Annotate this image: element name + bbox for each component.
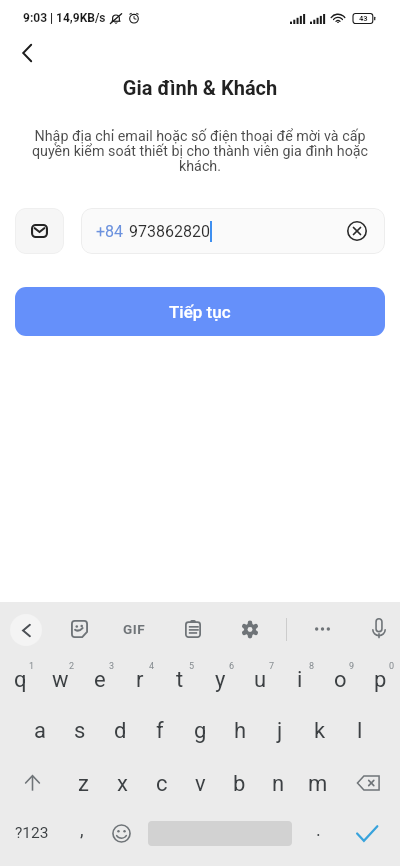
button[interactable]: Email <box>15 208 64 254</box>
staticText: e <box>94 667 106 693</box>
button[interactable]: b <box>220 757 259 808</box>
button[interactable]: v <box>181 757 220 808</box>
button[interactable]: Space <box>142 813 300 853</box>
staticText: p <box>374 667 387 693</box>
button[interactable]: Enter <box>345 813 389 853</box>
staticText: l <box>357 718 363 744</box>
button[interactable]: t <box>160 655 200 706</box>
staticText: ?123 <box>15 824 49 842</box>
staticText: 4 <box>149 661 155 672</box>
staticText: w <box>52 667 69 693</box>
staticText: 0 <box>389 661 395 672</box>
staticText: b <box>233 771 246 797</box>
staticText: 7 <box>269 661 275 672</box>
staticText: 1 <box>29 661 35 672</box>
staticText: g <box>194 718 207 744</box>
staticText: d <box>114 718 127 744</box>
staticText: f <box>156 718 164 744</box>
staticText: Gia đình & Khách <box>0 76 400 99</box>
staticText: h <box>234 718 247 744</box>
staticText: r <box>136 667 144 693</box>
button[interactable]: m <box>298 757 337 808</box>
button[interactable]: Tiếp tục <box>15 287 385 336</box>
staticText: j <box>277 718 283 744</box>
staticText: m <box>308 771 328 797</box>
button[interactable]: k <box>300 706 340 757</box>
staticText: 9:03 | 14,9KB/s <box>23 11 106 25</box>
staticText: 5 <box>189 661 195 672</box>
staticText: s <box>74 718 86 744</box>
button[interactable]: g <box>180 706 220 757</box>
staticText: k <box>314 718 326 744</box>
button[interactable]: Backspace <box>337 757 400 808</box>
button[interactable]: y <box>200 655 240 706</box>
staticText: +84 <box>96 222 124 241</box>
staticText: , <box>80 819 84 840</box>
staticText: i <box>297 667 303 693</box>
staticText: Tiếp tục <box>169 302 231 322</box>
button[interactable]: u <box>240 655 280 706</box>
button[interactable]: p <box>360 655 400 706</box>
button[interactable]: i <box>280 655 320 706</box>
button[interactable]: Emoji <box>101 813 141 853</box>
button[interactable]: Clear text <box>346 220 368 242</box>
button[interactable]: GIF <box>118 614 150 644</box>
staticText: 2 <box>69 661 75 672</box>
button[interactable]: s <box>60 706 100 757</box>
button[interactable]: d <box>100 706 140 757</box>
button[interactable]: x <box>103 757 142 808</box>
staticText: . <box>316 819 321 840</box>
button[interactable]: c <box>142 757 181 808</box>
button[interactable]: . <box>299 813 337 853</box>
staticText: z <box>78 771 89 797</box>
button[interactable]: Clipboard <box>178 614 208 644</box>
staticText: y <box>215 667 226 693</box>
staticText: o <box>334 667 347 693</box>
staticText: c <box>156 771 168 797</box>
staticText: GIF <box>123 621 146 637</box>
button[interactable]: r <box>120 655 160 706</box>
button[interactable]: Settings <box>235 614 265 644</box>
button[interactable]: e <box>80 655 120 706</box>
staticText: t <box>176 667 184 693</box>
staticText: 9 <box>349 661 355 672</box>
button[interactable]: Voice input <box>364 613 394 643</box>
staticText: n <box>272 771 285 797</box>
button[interactable]: ?123 <box>2 813 62 853</box>
button[interactable]: , <box>62 813 102 853</box>
button[interactable]: +84 <box>81 208 385 254</box>
staticText: x <box>117 771 128 797</box>
staticText: q <box>14 667 27 693</box>
staticText: v <box>195 771 206 797</box>
button[interactable]: f <box>140 706 180 757</box>
staticText: 8 <box>309 661 315 672</box>
staticText: u <box>254 667 267 693</box>
staticText: a <box>34 718 46 744</box>
staticText: 3 <box>109 661 115 672</box>
button[interactable]: a <box>20 706 60 757</box>
button[interactable]: j <box>260 706 300 757</box>
button[interactable]: z <box>64 757 103 808</box>
staticText: Nhập địa chỉ email hoặc số điện thoại để… <box>22 128 378 175</box>
button[interactable]: w <box>40 655 80 706</box>
button[interactable]: q <box>0 655 40 706</box>
staticText: 43 <box>359 14 368 23</box>
button[interactable]: o <box>320 655 360 706</box>
staticText: 973862820 <box>129 222 210 241</box>
button[interactable]: Shift <box>0 757 64 808</box>
button[interactable]: More options <box>307 614 337 644</box>
button[interactable]: n <box>259 757 298 808</box>
button[interactable]: h <box>220 706 260 757</box>
button[interactable]: l <box>340 706 380 757</box>
button[interactable]: Stickers <box>64 614 94 644</box>
button[interactable]: Back <box>10 614 42 646</box>
staticText: 6 <box>229 661 235 672</box>
button[interactable]: Back <box>10 36 44 70</box>
